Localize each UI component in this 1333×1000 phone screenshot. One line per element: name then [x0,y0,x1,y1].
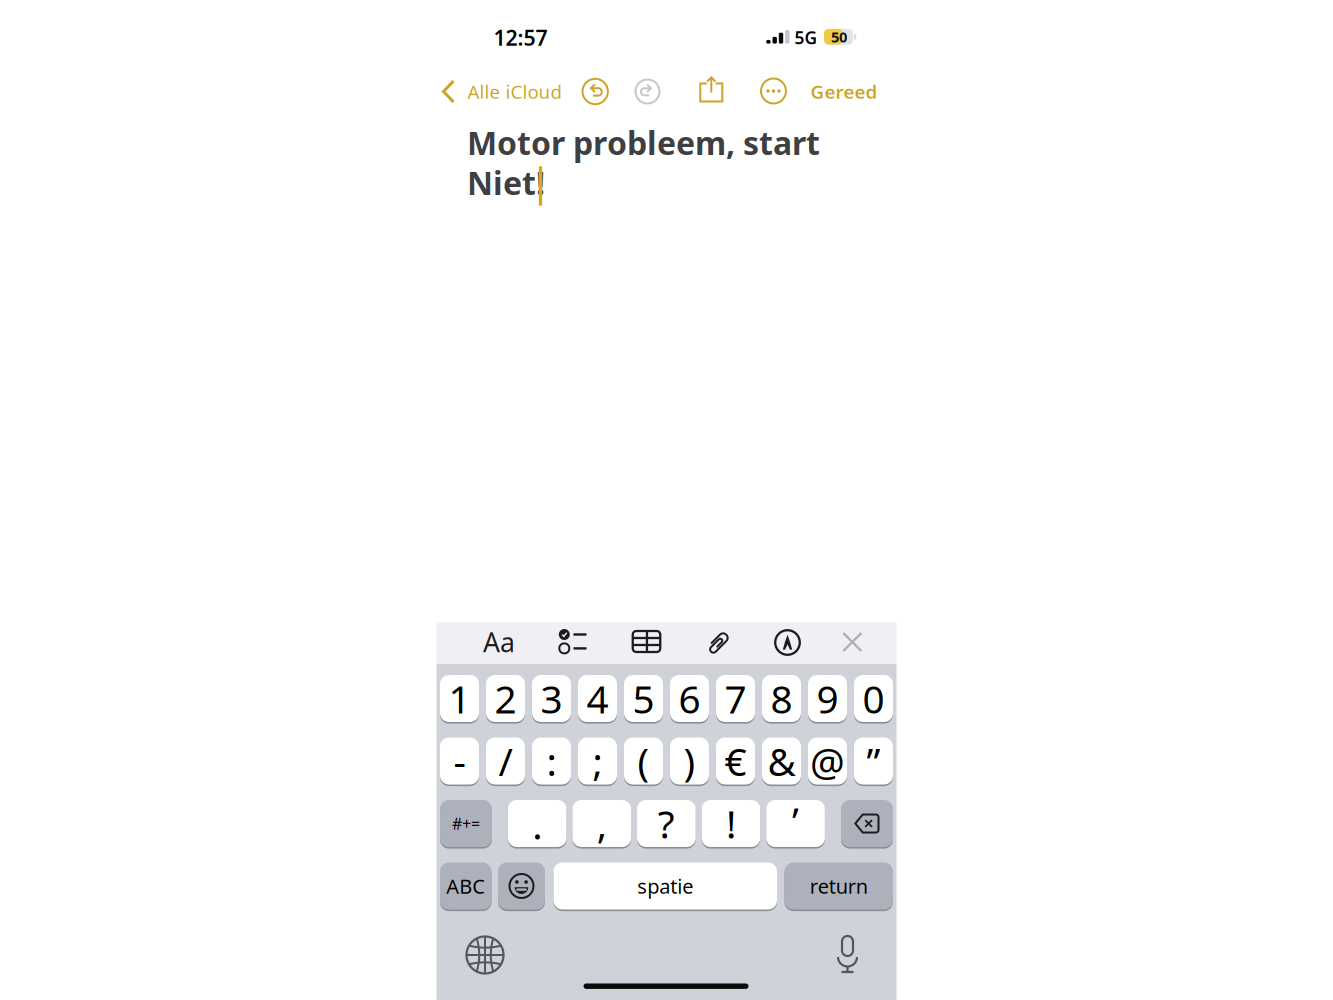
button[interactable]: ( [624,736,663,786]
button[interactable]: Dismiss keyboard [842,632,862,652]
staticText: ? [658,798,675,849]
button[interactable]: 7 [716,673,755,723]
staticText: 8 [770,673,792,724]
button[interactable]: Alle iCloud [441,79,561,104]
button[interactable]: ) [670,736,709,786]
button[interactable]: 0 [854,673,893,723]
button[interactable]: , [572,798,631,848]
button[interactable]: spatie [553,861,777,911]
staticText: Gereed [810,79,877,104]
button[interactable]: #+= [440,798,492,848]
staticText: 0 [862,673,884,724]
button[interactable]: - [440,736,479,786]
staticText: ) [683,735,695,787]
staticText: 3 [540,673,562,724]
button[interactable]: Delete [841,798,893,848]
staticText: : [546,735,556,787]
staticText: Aa [483,624,515,660]
button[interactable]: / [486,736,525,786]
button[interactable]: Dictate [832,934,862,974]
staticText: 12:57 [493,23,547,52]
staticText: ; [592,735,602,787]
button[interactable]: @ [808,736,847,786]
button[interactable]: Formatting [477,621,521,663]
button[interactable]: : [532,736,571,786]
staticText: ! [726,798,736,849]
staticText: € [724,735,746,787]
staticText: 9 [816,673,838,724]
staticText: . [532,799,542,850]
staticText: , [597,798,607,849]
button[interactable]: 9 [808,673,847,723]
button[interactable]: ! [702,798,760,848]
button[interactable]: 1 [440,673,479,723]
staticText: ( [637,735,649,787]
staticText: / [498,735,512,787]
staticText: Niet! [467,161,545,204]
staticText: spatie [637,873,693,899]
staticText: ABC [446,873,485,899]
button[interactable]: ” [854,736,893,786]
button[interactable]: 8 [762,673,801,723]
staticText: 7 [724,673,746,724]
staticText: & [767,735,795,787]
staticText: 5G [794,26,817,49]
button[interactable]: Undo [582,79,608,104]
button[interactable]: ABC [440,861,491,911]
button[interactable]: More [761,78,786,103]
button[interactable]: ; [578,736,617,786]
staticText: 6 [678,673,700,724]
button[interactable]: Gereed [810,79,877,104]
staticText: 50 [831,27,847,47]
staticText: 5 [632,673,654,724]
button[interactable]: return [784,861,893,911]
button[interactable]: ’ [766,798,825,848]
button[interactable]: Redo [635,79,659,103]
button[interactable]: 4 [578,673,617,723]
button[interactable]: ? [637,798,696,848]
button[interactable]: 2 [486,673,525,723]
button[interactable]: Checklist [557,629,588,654]
staticText: ” [866,735,880,787]
button[interactable]: Share [697,76,726,105]
staticText: ’ [792,795,799,846]
staticText: 2 [494,673,516,724]
button[interactable]: 5 [624,673,663,723]
staticText: 1 [448,673,470,724]
staticText: 4 [586,673,608,724]
staticText: Motor probleem, start [467,121,820,164]
staticText: return [810,873,868,899]
staticText: - [453,735,465,787]
button[interactable]: Markup [775,630,800,655]
staticText: @ [810,735,845,787]
button[interactable]: 6 [670,673,709,723]
button[interactable]: € [716,736,755,786]
button[interactable]: Table [633,631,660,652]
button[interactable]: . [508,798,566,848]
button[interactable]: Emoji [498,861,545,911]
button[interactable]: Next keyboard [463,933,507,977]
button[interactable]: Attach [710,629,727,655]
button[interactable]: & [762,736,801,786]
staticText: #+= [452,813,480,834]
staticText: Alle iCloud [467,79,561,104]
button[interactable]: 3 [532,673,571,723]
